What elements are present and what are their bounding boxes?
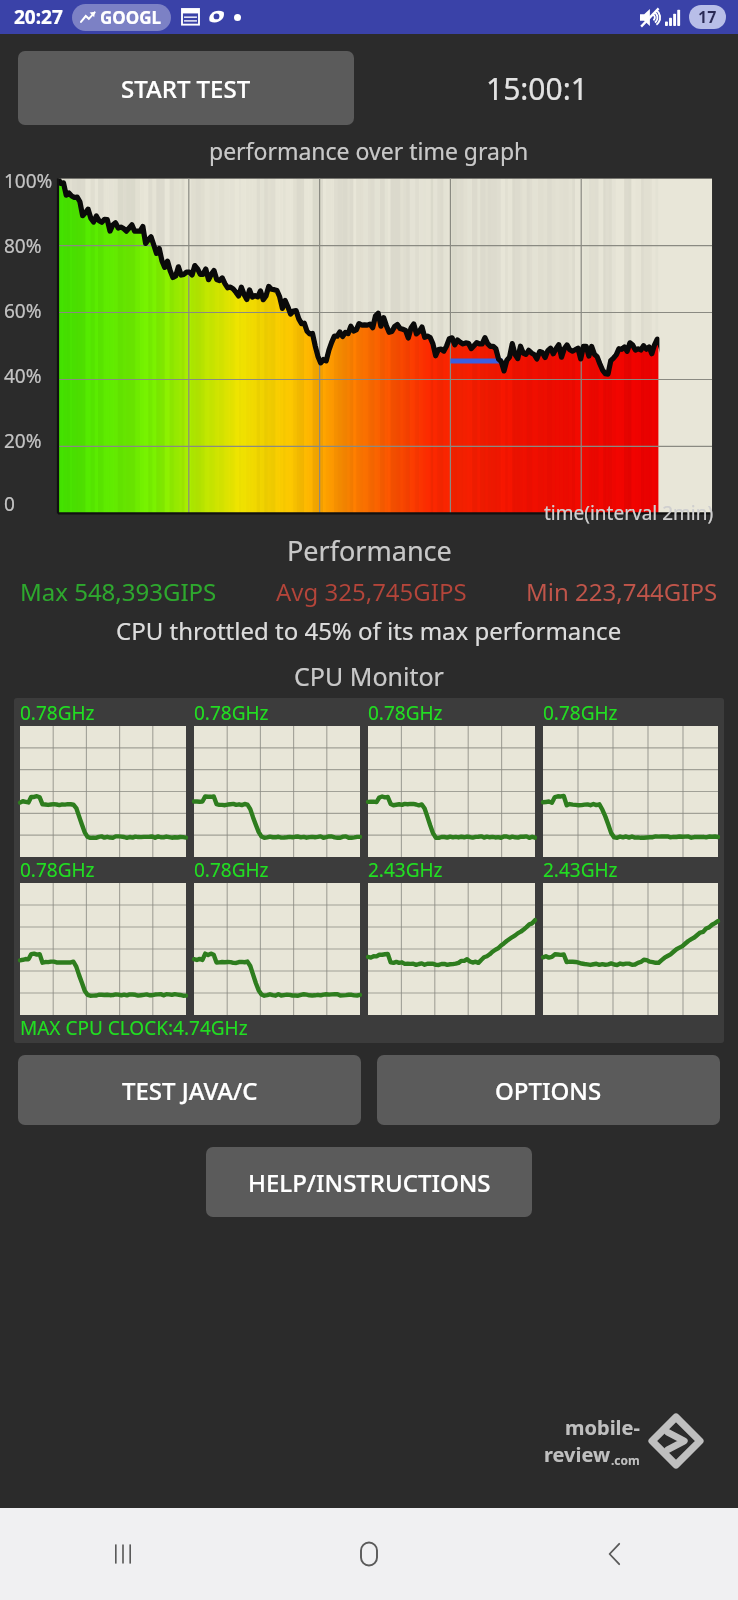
button[interactable]: TEST JAVA/C	[18, 1055, 361, 1125]
staticText: GOOGL	[100, 6, 162, 29]
staticText: Max 548,393GIPS	[20, 575, 217, 608]
staticText: START TEST	[121, 72, 251, 105]
staticText: TEST JAVA/C	[122, 1074, 258, 1107]
staticText: 0.78GHz	[20, 857, 95, 883]
staticText: 2.43GHz	[543, 857, 618, 883]
staticText: OPTIONS	[495, 1074, 602, 1107]
staticText: 60%	[4, 298, 42, 324]
staticText: 2.43GHz	[368, 857, 443, 883]
staticText: 15:00:1	[486, 68, 588, 109]
staticText: 0.78GHz	[20, 700, 95, 726]
staticText: CPU Monitor	[294, 659, 444, 693]
staticText: performance over time graph	[209, 135, 529, 166]
staticText: HELP/INSTRUCTIONS	[248, 1166, 491, 1199]
button[interactable]: Home	[246, 1508, 492, 1600]
button[interactable]: OPTIONS	[377, 1055, 720, 1125]
button[interactable]: START TEST	[18, 51, 354, 125]
staticText: mobile-	[565, 1414, 640, 1441]
staticText: 40%	[4, 363, 42, 389]
button[interactable]: Recent apps	[0, 1508, 246, 1600]
staticText: 0.78GHz	[368, 700, 443, 726]
staticText: 20:27	[14, 4, 63, 30]
staticText: 0	[4, 491, 15, 517]
staticText: CPU throttled to 45% of its max performa…	[116, 614, 622, 647]
staticText: Min 223,744GIPS	[526, 575, 718, 608]
staticText: 17	[698, 6, 717, 28]
staticText: review	[544, 1441, 611, 1468]
staticText: 0.78GHz	[194, 700, 269, 726]
staticText: Avg 325,745GIPS	[276, 575, 467, 608]
staticText: 80%	[4, 233, 42, 259]
staticText: MAX CPU CLOCK:4.74GHz	[20, 1015, 248, 1041]
button[interactable]: HELP/INSTRUCTIONS	[206, 1147, 532, 1217]
staticText: 0.78GHz	[194, 857, 269, 883]
staticText: 100%	[4, 168, 53, 194]
staticText: 20%	[4, 428, 42, 454]
staticText: time(interval 2min)	[544, 500, 714, 526]
button[interactable]: Back	[492, 1508, 738, 1600]
staticText: .com	[611, 1452, 640, 1468]
staticText: 0.78GHz	[543, 700, 618, 726]
staticText: Performance	[287, 532, 452, 569]
